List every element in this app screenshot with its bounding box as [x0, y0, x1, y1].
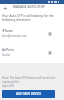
staticText: AirPrint	[2, 48, 14, 52]
button[interactable]: Back	[2, 4, 9, 12]
staticText: alice@example.com	[2, 34, 28, 38]
staticText: Studio	[2, 53, 11, 57]
staticText: MANAGE AUTO-STOP	[13, 5, 46, 9]
staticText: iPhone	[2, 29, 13, 33]
staticText: ADD NEW DEVICE	[16, 92, 42, 96]
button[interactable]: iPhone	[0, 24, 64, 43]
staticText: Note: The Auto-STP devices will need to …	[2, 76, 64, 88]
button[interactable]: AirPrint	[0, 43, 64, 62]
staticText: Your Auto-STP is still waiting for the f…	[2, 14, 54, 22]
button[interactable]: ADD NEW DEVICE	[2, 90, 55, 98]
